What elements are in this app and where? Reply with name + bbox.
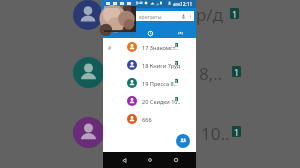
other: Contacts (178, 31, 183, 36)
button[interactable]: Back (118, 154, 130, 166)
staticText: 46% (173, 2, 181, 7)
button[interactable]: Recent calls (142, 25, 158, 41)
staticText: 17 Знакомст.. (142, 44, 179, 52)
button[interactable]: 17 Знакомст.. (103, 38, 196, 56)
staticText: 1 (232, 8, 238, 19)
staticText: 666 (142, 116, 152, 124)
staticText: 1 (175, 61, 178, 65)
button[interactable]: Recent apps (170, 154, 182, 166)
staticText: 1 (175, 79, 178, 83)
staticText: 10.. (201, 122, 230, 145)
other: Voice search (181, 14, 186, 19)
button[interactable]: Add contact (176, 134, 190, 148)
button[interactable]: Contacts (172, 25, 188, 41)
staticText: 1 (175, 43, 178, 47)
other: More options (188, 14, 193, 19)
button[interactable]: 666 (103, 110, 196, 128)
staticText: 12:11 (180, 1, 193, 8)
staticText: 1 (234, 126, 240, 137)
button[interactable]: Home (144, 154, 156, 166)
staticText: контакты (139, 14, 162, 21)
staticText: 8,.. (199, 62, 223, 85)
staticText: 18 Книги 7руд (142, 62, 181, 70)
button[interactable]: 18 Книги 7руд (103, 56, 196, 74)
staticText: р/д (196, 3, 223, 26)
staticText: # (108, 45, 112, 52)
staticText: 1 (234, 66, 240, 77)
staticText: 1 (175, 97, 178, 101)
other: Recent calls (148, 31, 153, 36)
button[interactable]: 19 Пресса 8.. (103, 74, 196, 92)
button[interactable]: контакты (105, 11, 194, 21)
button[interactable]: Video preview (101, 0, 136, 35)
staticText: 20 Скидки 10.. (142, 98, 181, 106)
staticText: 19 Пресса 8.. (142, 80, 177, 88)
button[interactable]: 20 Скидки 10.. (103, 92, 196, 110)
